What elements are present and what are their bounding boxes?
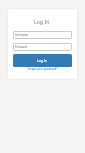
button[interactable]: Log In — [13, 54, 72, 67]
staticText: Password — [15, 45, 28, 49]
button[interactable]: Forgot your password? — [13, 67, 72, 71]
button[interactable]: Username — [13, 31, 72, 39]
staticText: Username — [15, 33, 29, 37]
staticText: Log In — [34, 18, 50, 25]
button[interactable]: Password — [13, 43, 72, 51]
staticText: Log In — [37, 58, 48, 63]
